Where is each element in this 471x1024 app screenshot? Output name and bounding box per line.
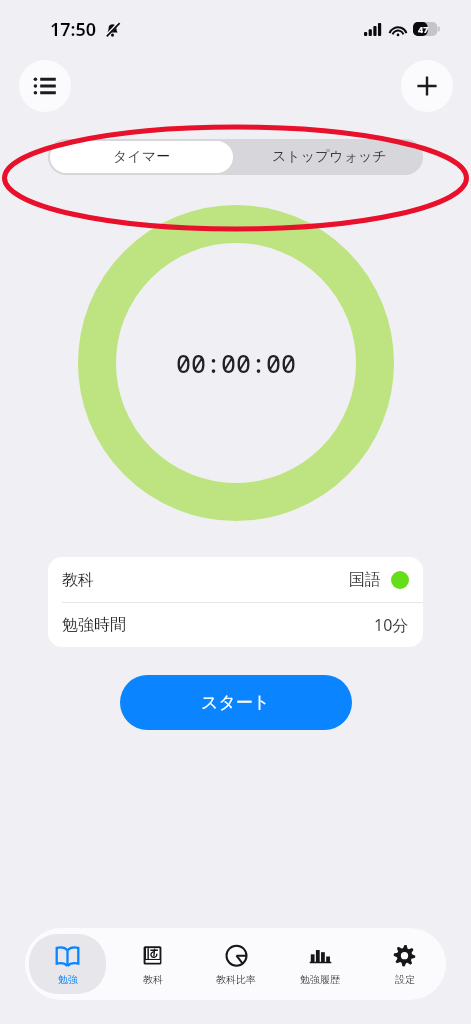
button[interactable]: スタート [120,675,352,730]
staticText: 勉強履歴 [300,973,340,986]
button[interactable]: 設定 [366,934,442,994]
staticText: 47 [418,23,429,35]
button[interactable]: List [19,60,71,112]
staticText: 教科比率 [216,973,256,986]
button[interactable]: タイマー [50,141,233,173]
staticText: 教科 [62,570,94,590]
staticText: 17:50 [50,17,97,42]
staticText: スタート [201,692,271,713]
staticText: 勉強時間 [62,615,126,635]
staticText: 教科 [143,973,163,986]
staticText: 設定 [395,973,415,986]
staticText: 勉強 [58,973,78,986]
button[interactable]: 勉強 [29,934,106,994]
button[interactable]: 勉強履歴 [282,934,358,994]
button[interactable]: 教科 [114,934,190,994]
staticText: タイマー [113,148,170,166]
staticText: ストップウォッチ [272,148,387,166]
staticText: 国語 [349,570,381,590]
button[interactable]: 教科 [48,557,423,602]
staticText: 10分 [374,614,409,636]
button[interactable]: 勉強時間 [48,603,423,647]
button[interactable]: 教科比率 [198,934,274,994]
staticText: 00:00:00 [176,346,297,380]
button[interactable]: Add [401,60,453,112]
button[interactable]: ストップウォッチ [235,139,423,175]
